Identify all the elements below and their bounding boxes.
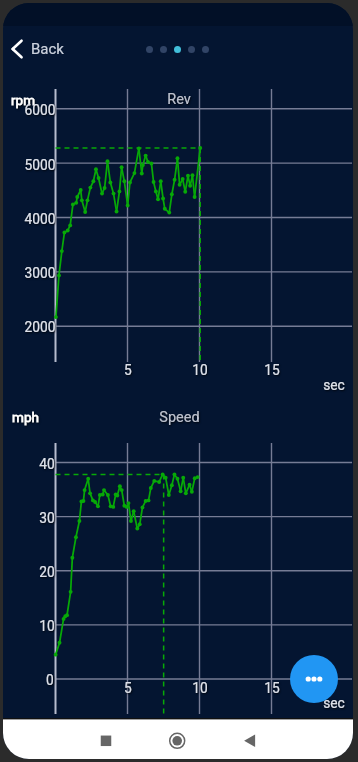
- staticText: 5: [124, 680, 132, 696]
- staticText: 10: [39, 618, 55, 634]
- staticText: 30: [39, 510, 55, 526]
- staticText: 15: [264, 680, 280, 696]
- staticText: 4000: [24, 211, 56, 227]
- staticText: rpm: [11, 92, 35, 108]
- staticText: sec: [323, 377, 345, 393]
- staticText: 2000: [24, 319, 56, 335]
- staticText: 10: [192, 680, 208, 696]
- staticText: Speed: [159, 409, 200, 426]
- staticText: 3000: [24, 265, 56, 281]
- staticText: Back: [31, 40, 64, 58]
- staticText: 6000: [24, 102, 56, 118]
- staticText: Rev: [167, 91, 191, 108]
- button[interactable]: More options: [290, 655, 338, 703]
- staticText: 40: [39, 456, 55, 472]
- staticText: 15: [264, 362, 280, 378]
- staticText: 0: [46, 672, 54, 688]
- button[interactable]: Back: [8, 36, 67, 62]
- staticText: 20: [39, 564, 55, 580]
- staticText: 10: [192, 362, 208, 378]
- staticText: sec: [323, 695, 345, 711]
- staticText: 5000: [24, 157, 56, 173]
- staticText: 5: [124, 362, 132, 378]
- staticText: mph: [12, 409, 39, 425]
